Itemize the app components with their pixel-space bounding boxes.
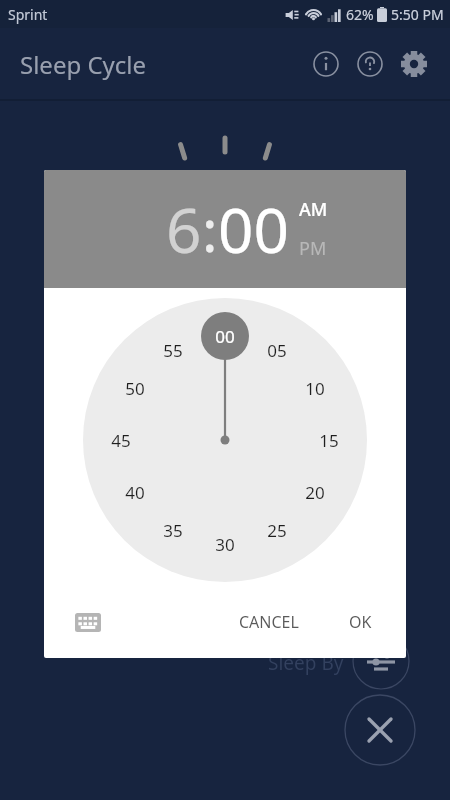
staticText: 55 (163, 339, 183, 362)
button[interactable]: 6 (166, 187, 202, 271)
button[interactable]: PM (299, 236, 327, 261)
button[interactable]: 50 (119, 376, 151, 400)
button[interactable]: 40 (119, 480, 151, 504)
staticText: 35 (163, 519, 183, 542)
button[interactable]: Settings (392, 42, 436, 86)
staticText: OK (349, 611, 372, 633)
button[interactable]: 20 (299, 480, 331, 504)
staticText: 30 (215, 533, 235, 556)
button[interactable]: 00 (209, 324, 241, 348)
button[interactable]: CANCEL (225, 603, 313, 641)
staticText: 40 (125, 481, 145, 504)
staticText: 45 (111, 429, 131, 452)
staticText: 05 (267, 339, 287, 362)
button[interactable]: OK (335, 603, 386, 641)
staticText: : (202, 190, 218, 269)
staticText: 50 (125, 377, 145, 400)
staticText: Sprint (8, 5, 48, 24)
staticText: 00 (218, 187, 289, 271)
staticText: 10 (305, 377, 325, 400)
staticText: 62% (346, 5, 374, 24)
button[interactable]: Info (304, 42, 348, 86)
button[interactable]: 10 (299, 376, 331, 400)
button[interactable]: Sleep options (352, 632, 410, 690)
button[interactable]: 00 (218, 187, 289, 271)
staticText: CANCEL (239, 611, 299, 633)
button[interactable]: 30 (209, 532, 241, 556)
staticText: Sleep By (268, 650, 344, 676)
button[interactable]: Help (348, 42, 392, 86)
staticText: 6 (166, 187, 202, 271)
staticText: Sleep Cycle (20, 48, 147, 81)
button[interactable]: 15 (313, 428, 345, 452)
staticText: PM (299, 236, 327, 261)
button[interactable]: 45 (105, 428, 137, 452)
button[interactable]: 55 (157, 338, 189, 362)
staticText: 00 (215, 325, 235, 348)
staticText: 20 (305, 481, 325, 504)
staticText: AM (299, 197, 328, 222)
button[interactable]: 35 (157, 518, 189, 542)
button[interactable]: 25 (261, 518, 293, 542)
staticText: 25 (267, 519, 287, 542)
staticText: 5:50 PM (391, 5, 444, 24)
button[interactable]: Keyboard input (70, 604, 106, 640)
button[interactable]: AM (299, 197, 328, 222)
staticText: 15 (319, 429, 339, 452)
button[interactable]: 05 (261, 338, 293, 362)
button[interactable]: Close (344, 694, 416, 766)
